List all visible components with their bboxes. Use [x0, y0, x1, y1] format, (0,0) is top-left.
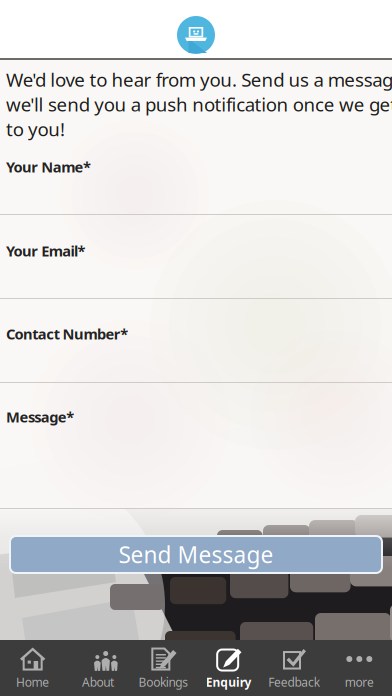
button[interactable]: Contact Number* [0, 324, 392, 396]
staticText: Message* [6, 407, 74, 426]
staticText: Contact Number* [6, 324, 128, 343]
staticText: Send Message [118, 539, 273, 569]
staticText: Your Email* [6, 241, 85, 260]
staticText: About [82, 674, 114, 690]
button[interactable]: Your Email* [0, 241, 392, 312]
staticText: Enquiry [206, 674, 252, 690]
button[interactable]: About [65, 640, 131, 696]
staticText: Home [16, 674, 49, 690]
staticText: Your Name* [6, 157, 91, 176]
button[interactable]: Your Name* [0, 157, 392, 228]
button[interactable]: more [327, 640, 392, 696]
button[interactable]: Send Message [10, 536, 382, 573]
staticText: Feedback [268, 674, 320, 690]
staticText: more [345, 674, 374, 690]
button[interactable]: Bookings [131, 640, 196, 696]
button[interactable]: Home [0, 640, 65, 696]
staticText: We'd love to hear from you. Send us a me… [6, 67, 392, 141]
button[interactable]: Feedback [261, 640, 327, 696]
button[interactable]: Message* [0, 407, 392, 522]
button[interactable]: Enquiry [196, 640, 261, 696]
staticText: Bookings [138, 674, 188, 690]
